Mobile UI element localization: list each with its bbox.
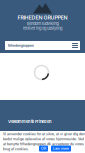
staticText: Velkommen til Friheden	[8, 119, 51, 124]
staticText: bedst mulige oplevelse af vores hjemmesi…	[3, 137, 84, 141]
button[interactable]: OK	[39, 145, 48, 151]
staticText: brug af cookies.	[3, 147, 29, 151]
staticText: frihedengruppen	[8, 44, 34, 47]
staticText: at benytte frihedengruppen.dk accepterer…	[3, 142, 84, 146]
staticText: Ejendomsudvikling	[26, 21, 58, 26]
staticText: FRIHEDEN GRUPPEN	[17, 14, 67, 21]
staticText: Læs mere	[53, 146, 69, 151]
staticText: Vi anvender cookies for at sikre, at vi …	[3, 132, 85, 136]
staticText: renlivering og udstyling	[23, 26, 62, 31]
button[interactable]: Menu	[70, 41, 80, 50]
staticText: OK	[41, 146, 46, 151]
button[interactable]: Læs mere	[51, 145, 71, 151]
button[interactable]: frihedengruppen	[5, 41, 36, 50]
